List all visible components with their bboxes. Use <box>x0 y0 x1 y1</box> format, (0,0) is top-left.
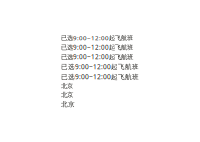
staticText: 已选9:00~12:00起飞航班 <box>61 34 133 42</box>
staticText: 已选9:00~12:00起飞航班 <box>61 52 133 61</box>
staticText: 已选9:00~12:00起飞航班 <box>61 62 139 71</box>
staticText: 已选9:00~12:00起飞航班 <box>61 72 139 81</box>
staticText: 北京 <box>61 91 73 99</box>
staticText: 已选9:00~12:00起飞航班 <box>61 43 133 51</box>
staticText: 北京 <box>61 82 73 90</box>
staticText: 北京 <box>61 100 75 108</box>
